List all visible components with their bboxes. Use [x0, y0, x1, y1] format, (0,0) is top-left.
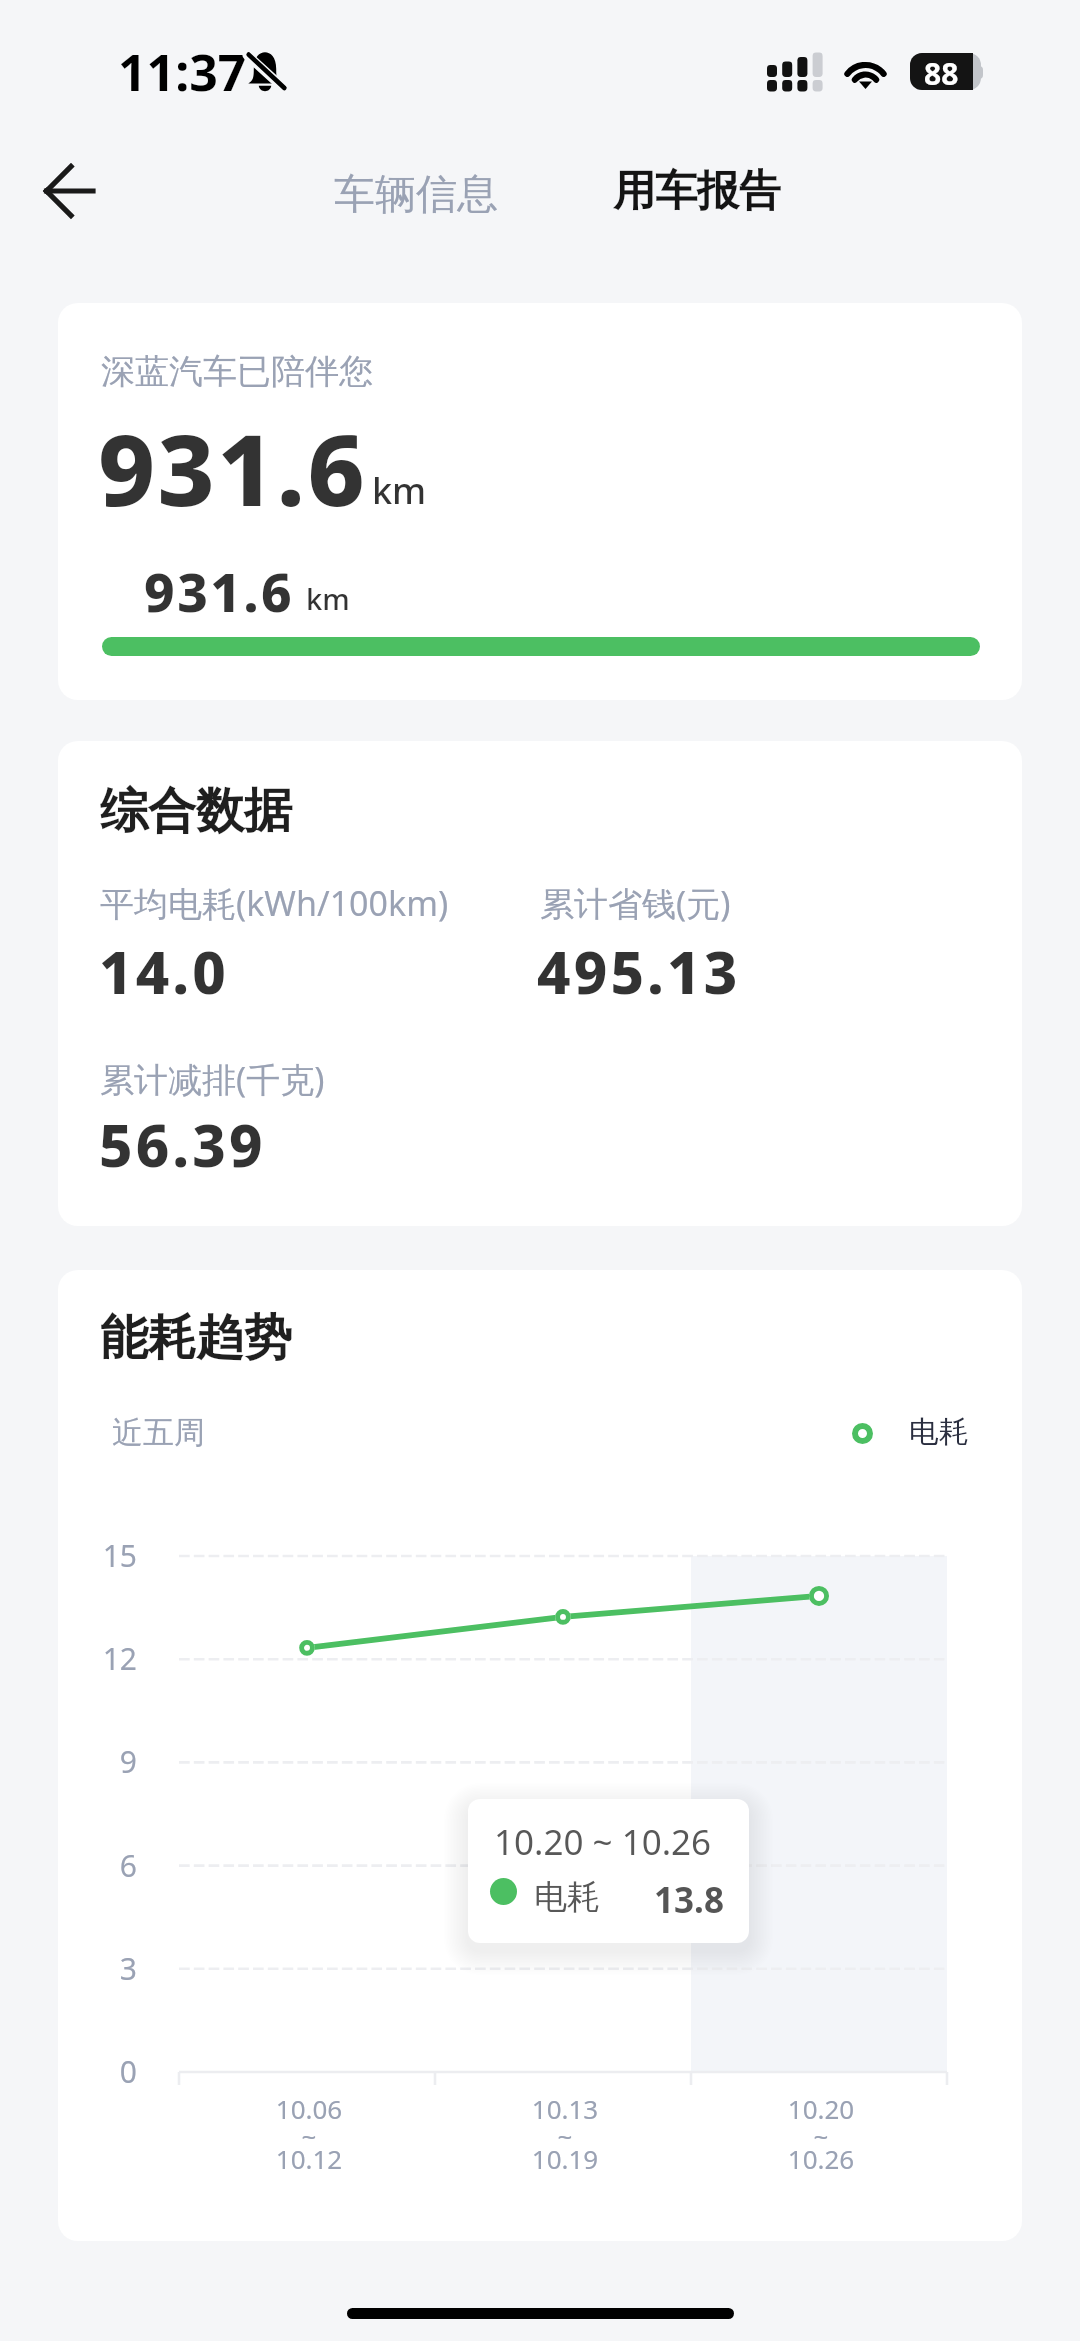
- staticText: ~: [731, 2118, 911, 2153]
- staticText: 495.13: [537, 932, 741, 1011]
- staticText: 931.6: [144, 555, 295, 627]
- staticText: 6: [119, 1845, 137, 1886]
- staticText: 3: [119, 1948, 137, 1989]
- staticText: 车辆信息: [334, 169, 498, 221]
- staticText: 能耗趋势: [100, 1308, 292, 1368]
- button[interactable]: 车辆信息: [318, 159, 514, 231]
- staticText: 10.20 ~ 10.26: [494, 1818, 712, 1866]
- staticText: 13.8: [654, 1876, 724, 1924]
- staticText: 累计减排(千克): [100, 1056, 325, 1102]
- staticText: 电耗: [909, 1413, 969, 1451]
- staticText: 931.6: [98, 400, 368, 535]
- staticText: 综合数据: [100, 781, 292, 841]
- staticText: 累计省钱(元): [540, 880, 731, 926]
- staticText: 10.20: [731, 2091, 911, 2126]
- staticText: 平均电耗(kWh/100km): [100, 880, 449, 926]
- staticText: 88: [924, 53, 959, 91]
- staticText: 12: [102, 1638, 137, 1679]
- staticText: 深蓝汽车已陪伴您: [101, 350, 373, 393]
- staticText: 10.19: [475, 2141, 655, 2176]
- staticText: 用车报告: [613, 165, 781, 218]
- staticText: 15: [102, 1535, 137, 1576]
- button[interactable]: 电耗: [838, 1409, 969, 1457]
- staticText: 11:37: [118, 38, 247, 106]
- staticText: 9: [119, 1741, 137, 1782]
- staticText: 近五周: [112, 1413, 205, 1452]
- staticText: km: [306, 579, 350, 618]
- button[interactable]: Back: [23, 144, 116, 237]
- staticText: km: [372, 466, 427, 515]
- staticText: 10.13: [475, 2091, 655, 2126]
- button[interactable]: 近五周: [102, 1408, 212, 1454]
- staticText: 电耗: [534, 1876, 600, 1918]
- staticText: 0: [119, 2051, 137, 2092]
- staticText: 10.12: [219, 2141, 399, 2176]
- staticText: 56.39: [99, 1105, 266, 1184]
- button[interactable]: 用车报告: [597, 155, 797, 228]
- staticText: 10.06: [219, 2091, 399, 2126]
- staticText: ~: [219, 2118, 399, 2153]
- staticText: 14.0: [99, 932, 229, 1011]
- staticText: ~: [475, 2118, 655, 2153]
- staticText: 10.26: [731, 2141, 911, 2176]
